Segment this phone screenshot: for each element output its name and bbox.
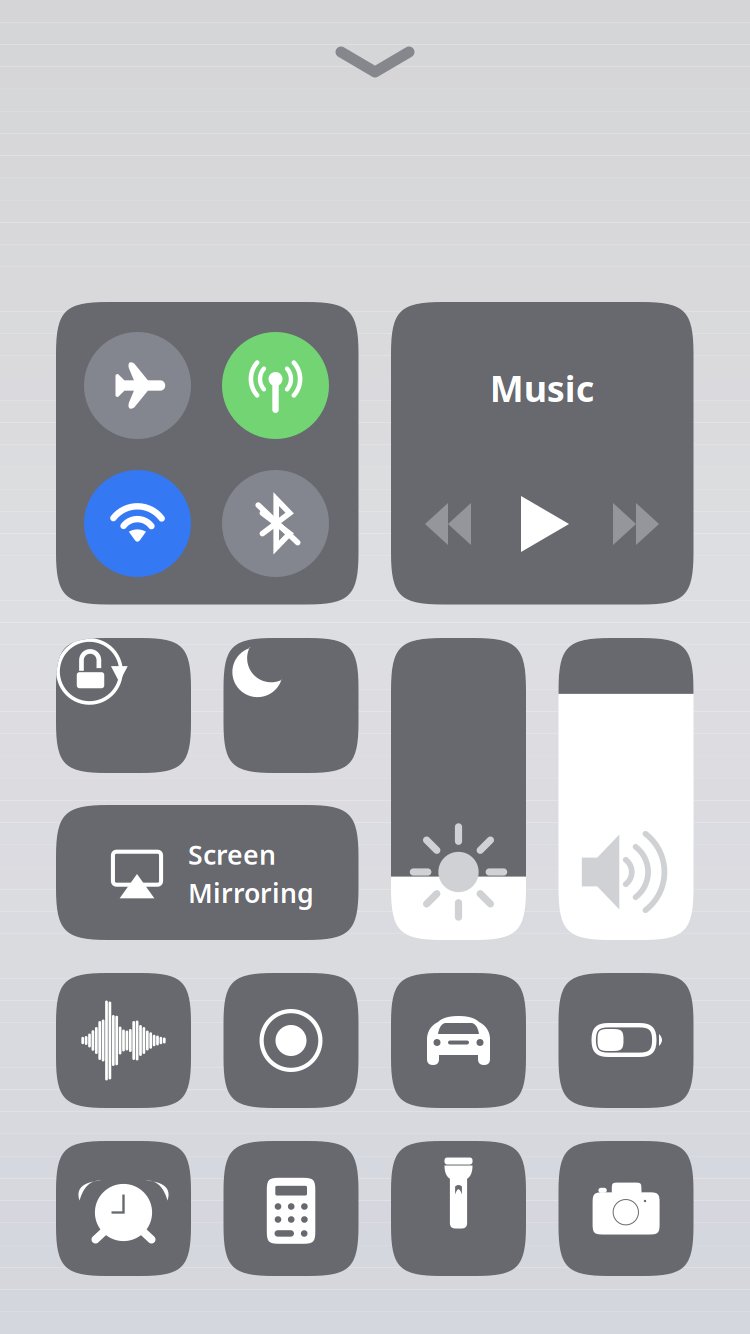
button[interactable]: Volume [558,638,693,940]
staticText: Mirroring [188,875,314,910]
button[interactable]: Rotation Lock [56,638,191,773]
button[interactable]: Bluetooth [222,470,329,577]
button[interactable]: Do Not Disturb [223,638,358,773]
button[interactable]: Wi-Fi [84,470,191,577]
button[interactable]: Screen Recording [223,973,358,1108]
button[interactable]: Music [391,302,693,604]
button[interactable]: Airplane Mode [84,332,191,439]
button[interactable]: Camera [558,1141,693,1276]
button[interactable]: Cellular Data [222,332,329,439]
button[interactable]: Screen Mirroring [56,805,358,940]
button[interactable]: Brightness [391,638,526,940]
staticText: Screen [188,837,276,872]
button[interactable]: Do Not Disturb While Driving [391,973,526,1108]
button[interactable]: Calculator [223,1141,358,1276]
button[interactable]: Flashlight [391,1141,526,1276]
button[interactable]: Close Control Center [335,44,415,80]
button[interactable]: Alarm [56,1141,191,1276]
button[interactable]: Low Power Mode [558,973,693,1108]
button[interactable]: Voice Memos [56,973,191,1108]
staticText: Music [490,364,595,412]
